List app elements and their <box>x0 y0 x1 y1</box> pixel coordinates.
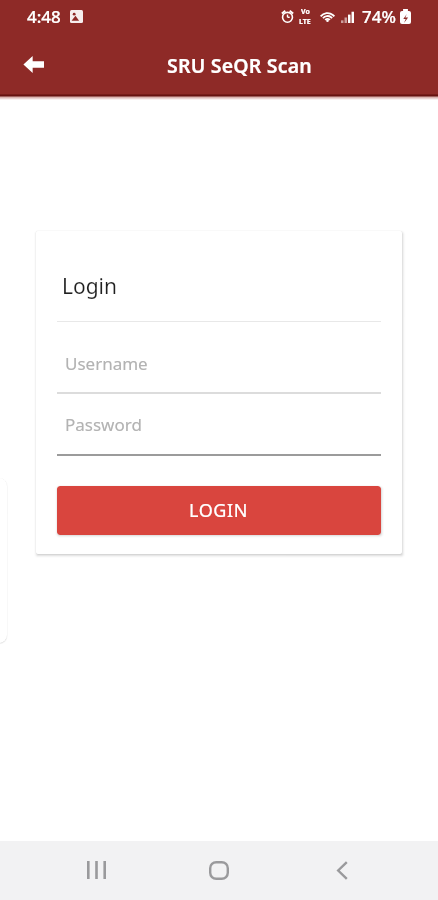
button[interactable]: Back <box>13 44 53 84</box>
staticText: Username <box>65 352 148 375</box>
button[interactable]: Password <box>57 408 381 456</box>
button[interactable]: Back <box>320 848 364 892</box>
button[interactable]: Recents <box>74 848 118 892</box>
staticText: LOGIN <box>189 498 249 523</box>
staticText: Login <box>62 272 118 301</box>
staticText: 4:48 <box>27 5 61 28</box>
staticText: 74% <box>362 5 396 28</box>
staticText: LTE <box>299 17 311 27</box>
button[interactable]: Username <box>57 347 381 394</box>
staticText: Vo <box>301 7 310 17</box>
button[interactable]: Home <box>197 848 241 892</box>
staticText: Password <box>65 413 142 436</box>
button[interactable]: LOGIN <box>57 486 381 535</box>
staticText: SRU SeQR Scan <box>167 52 312 79</box>
